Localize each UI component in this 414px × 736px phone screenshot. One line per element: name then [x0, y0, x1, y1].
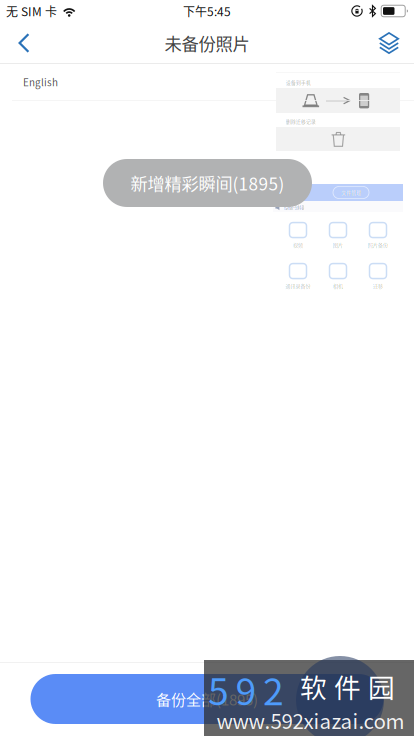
- staticText: 新增精彩瞬间(1895): [130, 170, 284, 195]
- staticText: 通讯录备份: [285, 282, 310, 289]
- staticText: 设备到手机: [286, 79, 311, 86]
- staticText: 备份全部(1895): [156, 688, 258, 710]
- staticText: 设备已连接: [284, 204, 304, 211]
- button[interactable]: 备份全部(1895): [30, 674, 383, 724]
- staticText: 图片: [333, 241, 343, 248]
- staticText: 件: [334, 667, 361, 705]
- button[interactable]: English: [0, 64, 414, 100]
- staticText: 未备份照片: [164, 30, 249, 56]
- staticText: 下午5:45: [183, 2, 231, 20]
- staticText: 视频: [293, 241, 303, 248]
- staticText: 相机: [333, 282, 343, 289]
- staticText: 园: [368, 667, 395, 705]
- staticText: 迁移: [373, 282, 383, 289]
- staticText: www.592xiazai.com: [216, 705, 404, 735]
- staticText: 9: [235, 662, 256, 716]
- staticText: 无 SIM 卡: [6, 2, 57, 20]
- staticText: 5: [208, 662, 229, 716]
- button[interactable]: Back: [1, 22, 47, 64]
- staticText: 文件管理: [341, 189, 361, 196]
- staticText: 删除迁移记录: [286, 118, 316, 125]
- staticText: 软: [300, 667, 327, 705]
- staticText: 2: [263, 662, 284, 716]
- staticText: English: [23, 75, 58, 89]
- staticText: 照片备份: [368, 241, 388, 248]
- button[interactable]: Albums: [366, 22, 412, 64]
